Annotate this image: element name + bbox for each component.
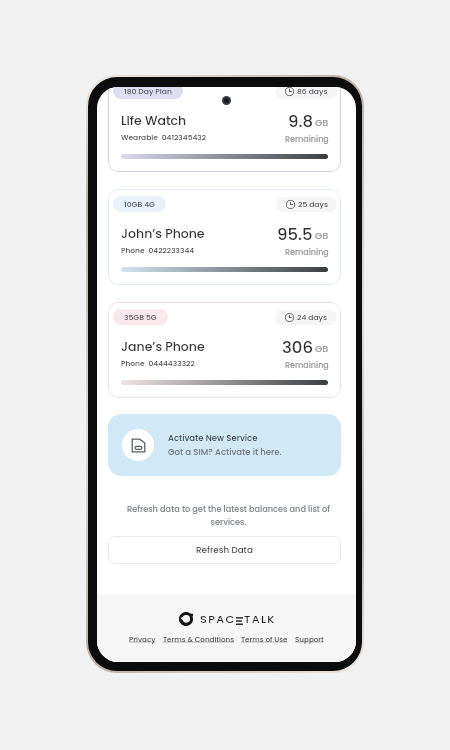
staticText: Terms & Conditions <box>163 634 234 644</box>
staticText: 180 Day Plan <box>124 87 172 97</box>
staticText: GB <box>315 229 329 242</box>
staticText: Refresh Data <box>196 544 253 556</box>
button[interactable]: Terms of Use <box>241 634 288 644</box>
staticText: Life Watch <box>121 112 187 129</box>
staticText: GB <box>315 342 329 355</box>
button[interactable]: Privacy <box>129 634 156 644</box>
staticText: 24 days <box>297 312 328 323</box>
staticText: Privacy <box>129 634 156 644</box>
staticText: Remaining <box>285 134 329 145</box>
button[interactable]: 35GB 5G <box>108 302 341 398</box>
staticText: SPAC <box>200 611 236 627</box>
staticText: Remaining <box>285 360 329 371</box>
staticText: Jane’s Phone <box>121 338 205 355</box>
staticText: 25 days <box>298 199 328 210</box>
staticText: Refresh data to get the latest balances … <box>118 503 339 527</box>
staticText: Wearable 0412345432 <box>121 132 207 142</box>
staticText: John’s Phone <box>121 225 205 242</box>
staticText: Terms of Use <box>241 634 288 644</box>
button[interactable]: Support <box>295 634 324 644</box>
staticText: Support <box>295 634 324 644</box>
staticText: 9.8 <box>288 110 313 133</box>
button[interactable]: 180 Day Plan <box>108 87 341 172</box>
staticText: Remaining <box>285 247 329 258</box>
button[interactable]: Activate New Service <box>108 414 341 476</box>
staticText: 10GB 4G <box>124 199 155 210</box>
staticText: Activate New Service <box>168 432 258 444</box>
staticText: Got a SIM? Activate it here. <box>168 446 282 458</box>
staticText: Phone 0444433322 <box>121 358 195 368</box>
staticText: 35GB 5G <box>124 312 157 323</box>
staticText: 95.5 <box>277 223 313 246</box>
staticText: GB <box>315 116 329 129</box>
button[interactable]: 10GB 4G <box>108 189 341 285</box>
staticText: TALK <box>244 611 276 627</box>
staticText: 306 <box>282 336 313 359</box>
button[interactable]: Refresh Data <box>108 536 341 564</box>
other: Spacetalk <box>179 612 193 626</box>
staticText: Phone 0422233344 <box>121 245 195 255</box>
staticText: 86 days <box>297 87 328 97</box>
button[interactable]: Terms & Conditions <box>163 634 234 644</box>
